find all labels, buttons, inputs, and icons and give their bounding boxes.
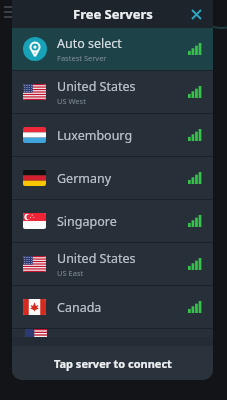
staticText: Singapore <box>57 213 117 230</box>
button[interactable]: United States <box>12 243 213 285</box>
staticText: Germany <box>57 170 112 187</box>
staticText: Luxembourg <box>57 127 133 144</box>
staticText: Canada <box>57 299 102 316</box>
staticText: US West <box>57 96 86 106</box>
staticText: Fastest Server <box>57 53 107 63</box>
button[interactable]: Singapore <box>12 200 213 242</box>
staticText: Free Servers <box>73 5 153 23</box>
button[interactable]: United States <box>12 71 213 113</box>
button[interactable]: Tap server to connect <box>12 346 213 380</box>
staticText: United States <box>57 78 136 95</box>
staticText: Tap server to connect <box>54 356 172 371</box>
button[interactable]: Auto select <box>12 28 213 70</box>
staticText: US East <box>57 268 84 278</box>
button[interactable]: Luxembourg <box>12 114 213 156</box>
staticText: United States <box>57 250 136 267</box>
button[interactable]: Canada <box>12 286 213 328</box>
button[interactable]: Germany <box>12 157 213 199</box>
button[interactable]: Close <box>185 3 207 25</box>
staticText: Auto select <box>57 35 122 52</box>
